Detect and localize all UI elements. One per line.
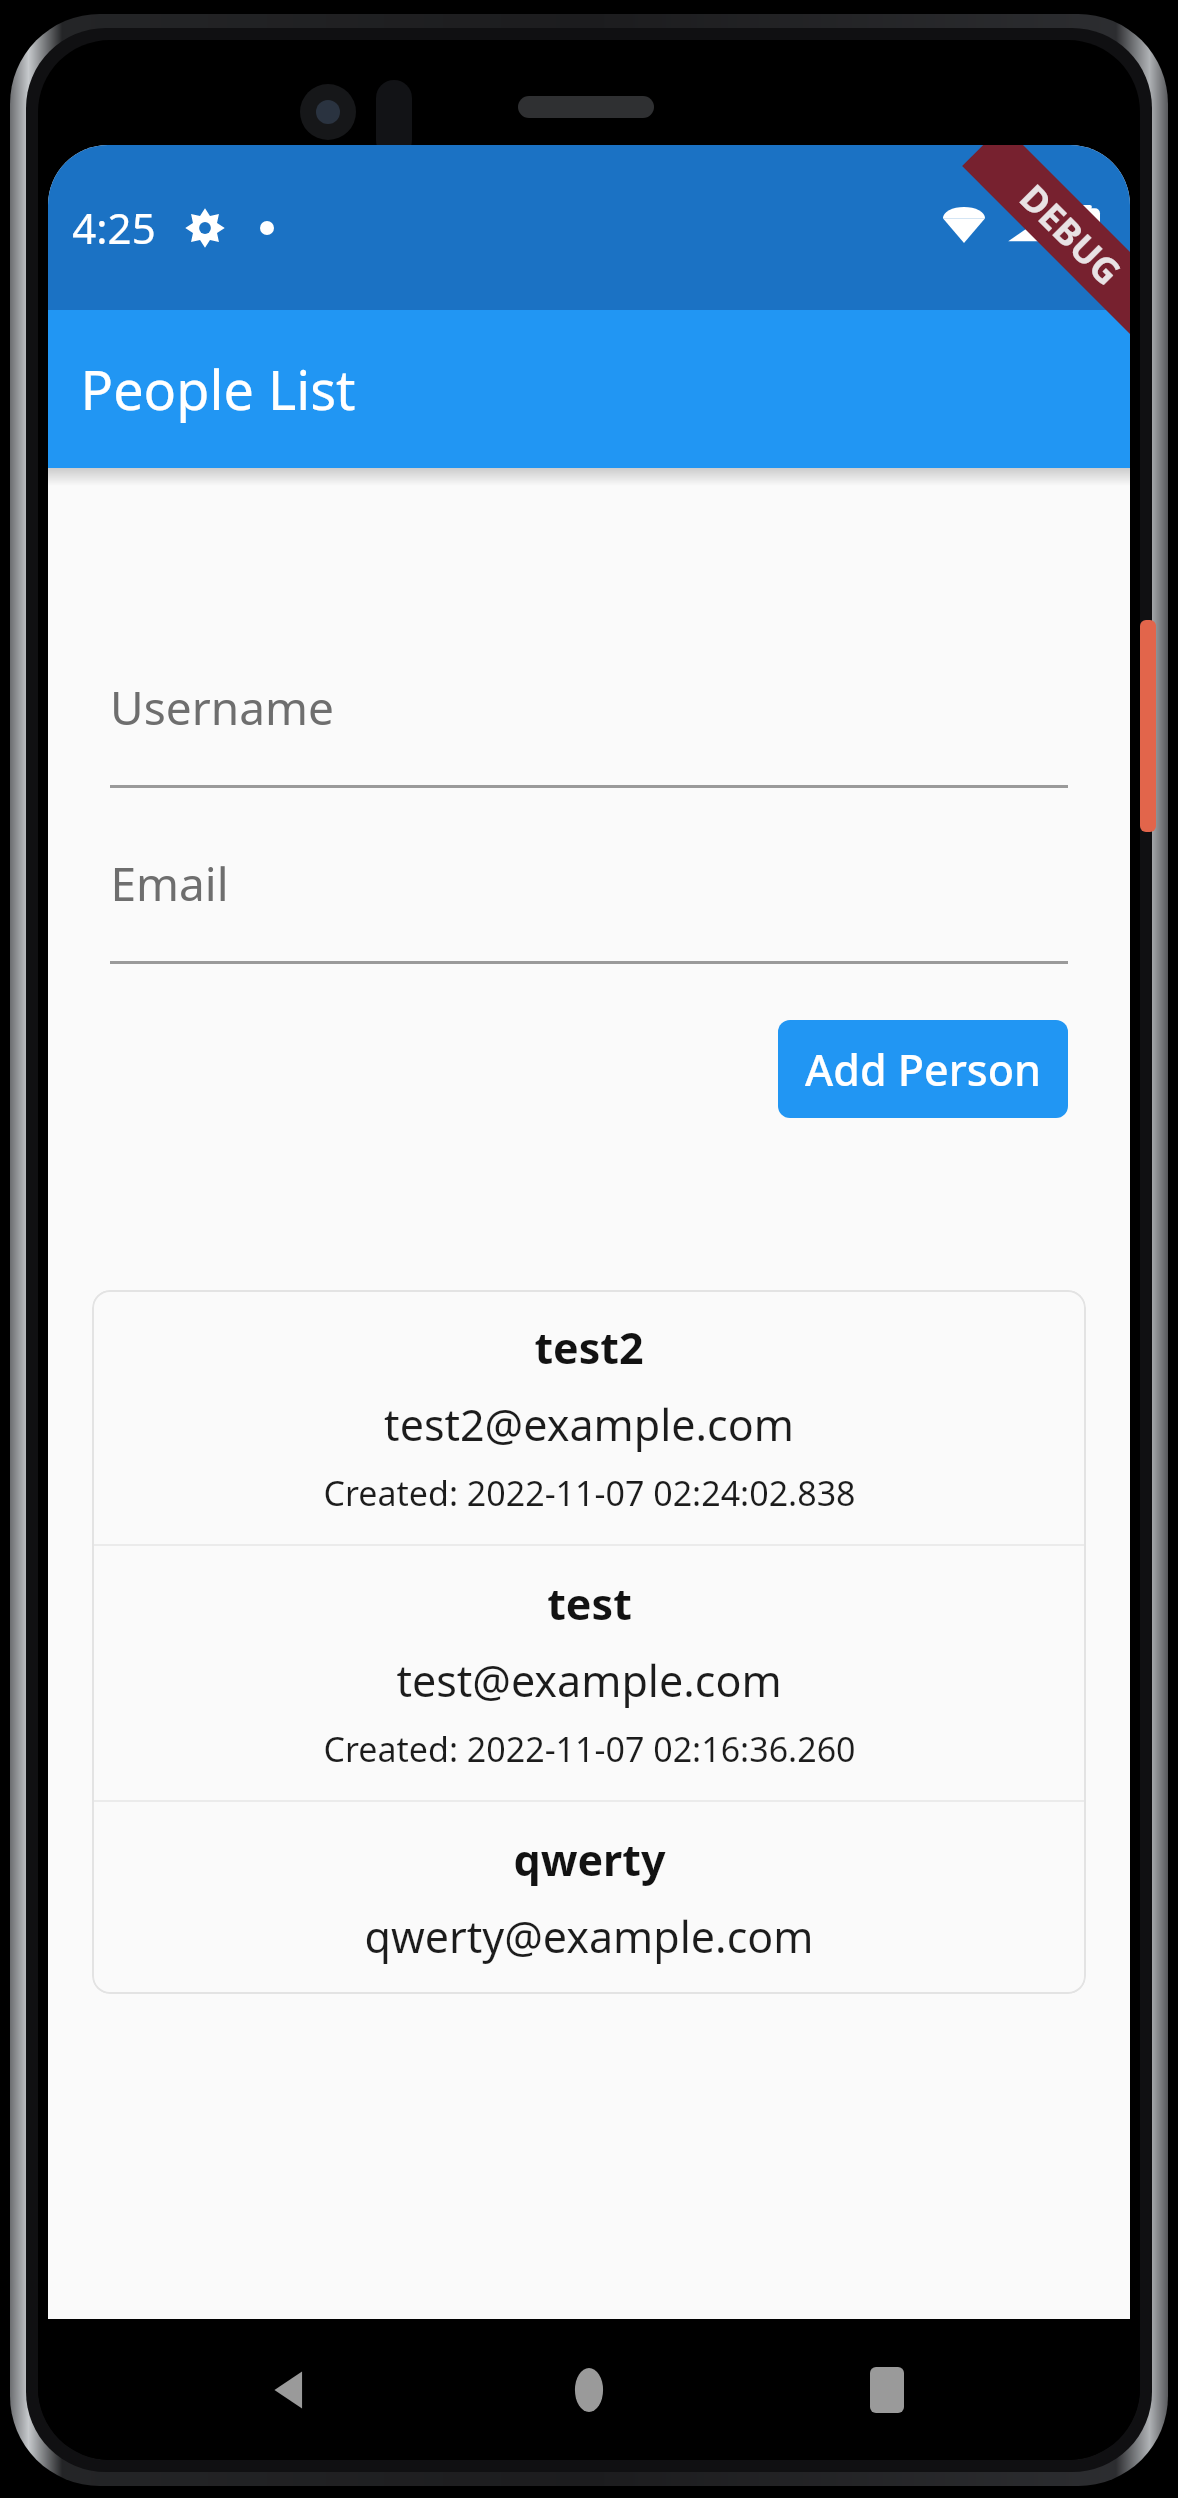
staticText: test — [547, 1574, 632, 1633]
staticText: 4:25 — [72, 199, 156, 256]
staticText: Add Person — [805, 1040, 1041, 1099]
staticText: qwerty — [513, 1830, 666, 1889]
button[interactable]: Back — [246, 2345, 336, 2435]
staticText: People List — [80, 352, 356, 426]
staticText: test2 — [534, 1318, 644, 1377]
button[interactable]: qwerty — [92, 1802, 1086, 1994]
button[interactable]: Username — [110, 676, 1068, 788]
staticText: Username — [110, 676, 334, 739]
staticText: Created: 2022-11-07 02:16:36.260 — [323, 1726, 856, 1772]
button[interactable]: Add Person — [778, 1020, 1068, 1118]
button[interactable]: Email — [110, 852, 1068, 964]
button[interactable]: test — [92, 1546, 1086, 1800]
button[interactable]: Recent apps — [842, 2345, 932, 2435]
button[interactable]: test2 — [92, 1290, 1086, 1544]
staticText: test@example.com — [396, 1651, 782, 1710]
staticText: Email — [110, 852, 229, 915]
staticText: DEBUG — [1009, 173, 1130, 295]
button[interactable]: Home — [544, 2345, 634, 2435]
staticText: Created: 2022-11-07 02:24:02.838 — [323, 1470, 856, 1516]
staticText: test2@example.com — [384, 1395, 794, 1454]
staticText: qwerty@example.com — [364, 1907, 814, 1966]
